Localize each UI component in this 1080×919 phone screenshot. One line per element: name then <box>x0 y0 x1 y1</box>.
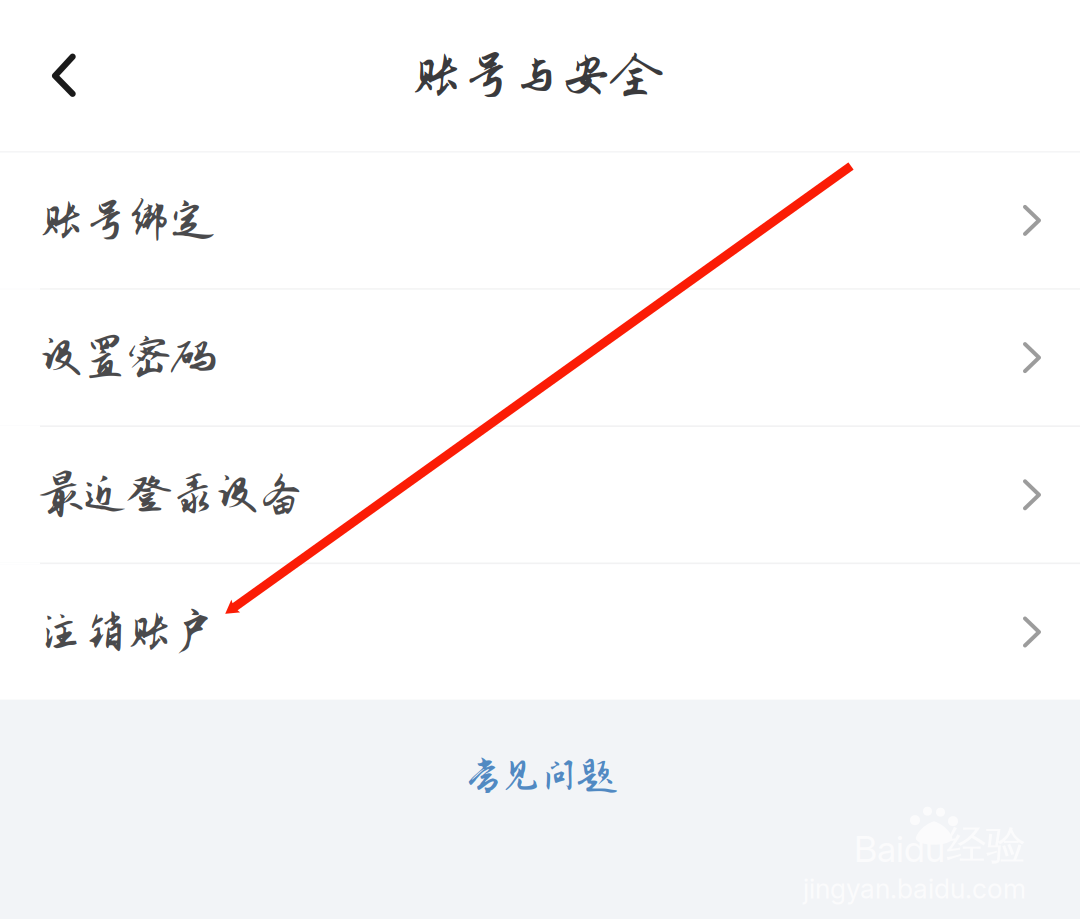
staticText: jingyan.baidu.com <box>803 873 1026 905</box>
staticText: 账号绑定 <box>39 196 215 245</box>
button[interactable]: 常见问题 <box>0 755 1080 797</box>
button[interactable]: 最近登录设备 <box>0 427 1080 563</box>
button[interactable]: 设置密码 <box>0 290 1080 425</box>
button[interactable]: Back <box>0 0 104 151</box>
staticText: 经验 <box>946 820 1026 871</box>
staticText: 最近登录设备 <box>39 470 303 519</box>
staticText: 注销账户 <box>39 607 215 657</box>
staticText: 设置密码 <box>39 333 215 382</box>
staticText: 账号与安全 <box>411 47 661 103</box>
button[interactable]: 注销账户 <box>0 564 1080 700</box>
staticText: 常见问题 <box>464 755 616 797</box>
staticText: Baidu <box>854 827 945 871</box>
button[interactable]: 账号绑定 <box>0 153 1080 288</box>
